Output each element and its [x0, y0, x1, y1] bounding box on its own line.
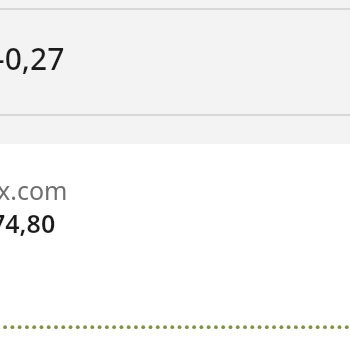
staticText: 74,80 [0, 206, 56, 240]
button[interactable]: -0,27 [0, 10, 350, 114]
button[interactable]: x.com [0, 144, 350, 319]
staticText: x.com [0, 173, 68, 207]
staticText: -0,27 [0, 38, 65, 79]
